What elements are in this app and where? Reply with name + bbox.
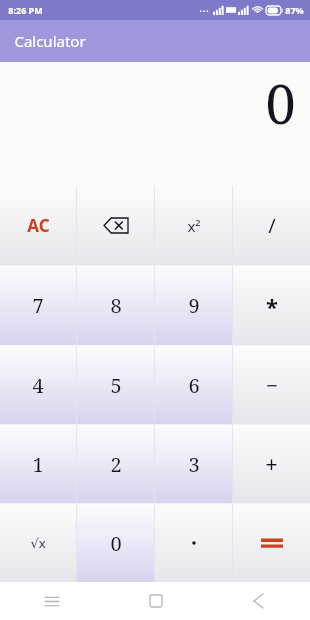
button[interactable]: Backspace: [77, 186, 154, 265]
staticText: AC: [27, 214, 50, 237]
button[interactable]: 8: [77, 266, 154, 345]
staticText: 87%: [285, 4, 304, 16]
staticText: 3: [188, 451, 200, 478]
button[interactable]: 3: [155, 425, 232, 503]
button[interactable]: Multiply: [233, 266, 310, 345]
staticText: 9: [188, 292, 200, 319]
staticText: /: [268, 212, 276, 239]
button[interactable]: 1: [0, 425, 76, 503]
button[interactable]: Divide: [233, 186, 310, 265]
button[interactable]: 4: [0, 346, 76, 424]
button[interactable]: Decimal point: [155, 504, 232, 582]
button[interactable]: Home: [104, 582, 207, 620]
staticText: −: [266, 372, 278, 399]
button[interactable]: Square: [155, 186, 232, 265]
staticText: √x: [30, 534, 46, 552]
staticText: +: [265, 450, 278, 479]
button[interactable]: 9: [155, 266, 232, 345]
button[interactable]: Recent apps: [0, 582, 104, 620]
staticText: *: [266, 291, 278, 321]
staticText: 0: [265, 66, 296, 140]
button[interactable]: 7: [0, 266, 76, 345]
staticText: Calculator: [14, 31, 86, 51]
staticText: x²: [187, 216, 201, 236]
button[interactable]: Equals: [233, 504, 310, 582]
staticText: 7: [32, 292, 44, 319]
staticText: 6: [188, 372, 200, 399]
button[interactable]: 0: [77, 504, 154, 582]
button[interactable]: 2: [77, 425, 154, 503]
button[interactable]: Minus: [233, 346, 310, 424]
staticText: 4: [32, 372, 44, 399]
staticText: 8: [110, 292, 122, 319]
button[interactable]: Plus: [233, 425, 310, 503]
staticText: 1: [32, 451, 44, 478]
staticText: 2: [110, 451, 122, 478]
button[interactable]: 6: [155, 346, 232, 424]
staticText: 8:26 PM: [8, 4, 43, 16]
button[interactable]: Square root: [0, 504, 76, 582]
button[interactable]: Back: [207, 582, 310, 620]
button[interactable]: 5: [77, 346, 154, 424]
staticText: 5: [110, 372, 122, 399]
staticText: 0: [110, 530, 122, 557]
button[interactable]: All clear: [0, 186, 76, 265]
